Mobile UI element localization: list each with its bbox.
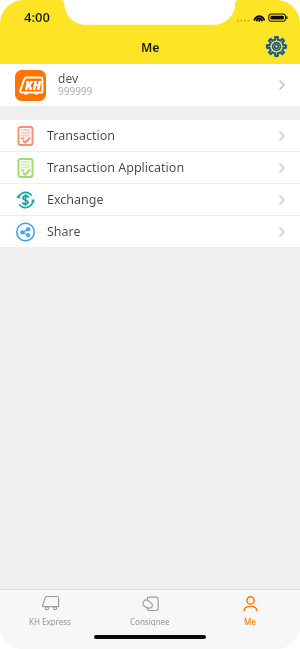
button[interactable]: KH	[0, 64, 300, 106]
button[interactable]: Transaction	[0, 120, 300, 151]
staticText: Exchange	[47, 191, 104, 208]
staticText: Me	[244, 616, 256, 626]
staticText: Me	[141, 39, 160, 55]
button[interactable]: Settings	[261, 31, 291, 61]
button[interactable]: Transaction Application	[0, 152, 300, 183]
staticText: 999999	[58, 84, 93, 98]
staticText: KH Express	[29, 616, 71, 626]
staticText: Transaction Application	[47, 159, 185, 176]
button[interactable]: Consignee	[100, 590, 200, 626]
button[interactable]: Share	[0, 216, 300, 247]
staticText: KH	[25, 78, 41, 94]
staticText: Share	[47, 223, 81, 240]
staticText: dev	[58, 70, 79, 86]
button[interactable]: Exchange	[0, 184, 300, 215]
button[interactable]: KH Express	[0, 590, 100, 626]
staticText: 4:00	[24, 8, 50, 26]
staticText: Consignee	[130, 616, 170, 626]
staticText: Transaction	[47, 127, 116, 144]
button[interactable]: Me	[200, 590, 300, 626]
